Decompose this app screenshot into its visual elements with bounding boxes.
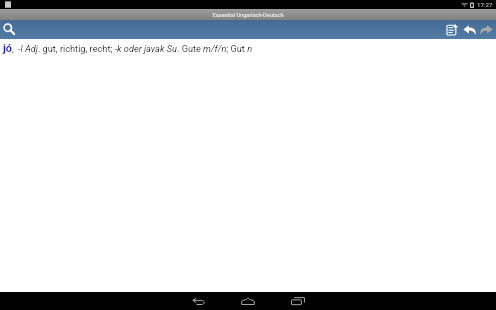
- staticText: jó, -l Adj. gut, richtig, recht; -k oder…: [3, 42, 253, 55]
- staticText: 17:27: [477, 1, 493, 8]
- button[interactable]: Forward: [478, 20, 495, 39]
- staticText: Essential Ungarisch-Deutsch: [212, 12, 284, 19]
- button[interactable]: Recent apps: [273, 292, 323, 310]
- button[interactable]: Back: [461, 20, 478, 39]
- button[interactable]: Back: [173, 292, 223, 310]
- button[interactable]: Search: [0, 20, 18, 39]
- button[interactable]: New note: [443, 20, 461, 39]
- button[interactable]: Home: [223, 292, 273, 310]
